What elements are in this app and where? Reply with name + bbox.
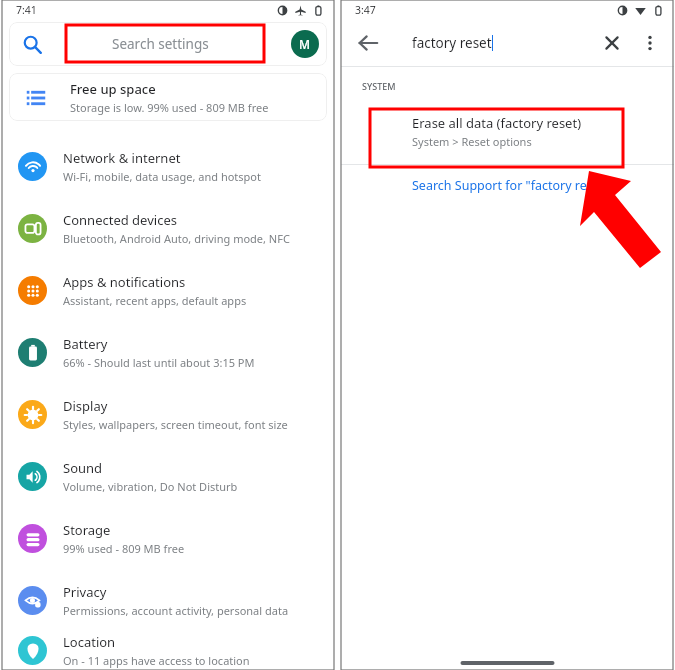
other: Back [357, 32, 379, 54]
staticText: Erase all data (factory reset) [412, 114, 582, 132]
staticText: 99% used - 809 MB free [63, 541, 185, 556]
staticText: Wi-Fi, mobile, data usage, and hotspot [63, 169, 261, 184]
button[interactable]: Battery [2, 321, 334, 383]
staticText: On - 11 apps have access to location [63, 653, 250, 668]
staticText: Apps & notifications [63, 273, 186, 291]
staticText: Storage is low. 99% used - 809 MB free [70, 100, 269, 115]
staticText: Assistant, recent apps, default apps [63, 293, 247, 308]
button[interactable]: Display [2, 383, 334, 445]
button[interactable]: Erase all data (factory reset) [341, 105, 674, 157]
staticText: 3:47 [355, 3, 376, 17]
staticText: Battery [63, 335, 108, 353]
staticText: Search settings [112, 35, 209, 53]
staticText: Free up space [70, 80, 156, 98]
staticText: 66% - Should last until about 3:15 PM [63, 355, 255, 370]
staticText: Display [63, 397, 108, 415]
staticText: Connected devices [63, 211, 177, 229]
staticText: factory reset [412, 34, 492, 52]
other: Search [21, 33, 43, 55]
button[interactable]: Connected devices [2, 197, 334, 259]
staticText: Permissions, account activity, personal … [63, 603, 289, 618]
button[interactable]: More options [640, 33, 660, 53]
button[interactable]: Network & internet [2, 135, 334, 197]
staticText: Sound [63, 459, 103, 477]
staticText: System > Reset options [412, 134, 532, 149]
button[interactable]: Clear [602, 33, 622, 53]
staticText: Volume, vibration, Do Not Disturb [63, 479, 238, 494]
button[interactable]: Apps & notifications [2, 259, 334, 321]
button[interactable]: Free up space [9, 73, 327, 121]
staticText: Network & internet [63, 149, 181, 167]
staticText: 7:41 [16, 3, 37, 17]
staticText: SYSTEM [362, 80, 396, 92]
staticText: Styles, wallpapers, screen timeout, font… [63, 417, 288, 432]
staticText: Bluetooth, Android Auto, driving mode, N… [63, 231, 290, 246]
staticText: Location [63, 633, 116, 651]
staticText: Storage [63, 521, 111, 539]
button[interactable]: Location [2, 631, 334, 670]
button[interactable]: Privacy [2, 569, 334, 631]
button[interactable]: Search Support for "factory reset" [412, 177, 610, 194]
button[interactable]: Search [9, 22, 327, 66]
button[interactable]: M [291, 30, 319, 58]
staticText: M [299, 36, 311, 52]
button[interactable]: Storage [2, 507, 334, 569]
button[interactable]: Sound [2, 445, 334, 507]
staticText: Privacy [63, 583, 107, 601]
